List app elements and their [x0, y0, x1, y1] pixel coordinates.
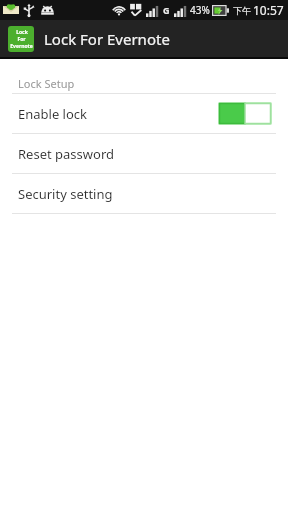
- staticText: 10:57: [253, 2, 284, 18]
- button[interactable]: Enable lock toggle: [218, 102, 272, 125]
- staticText: Lock For Evernote: [44, 29, 170, 49]
- staticText: Lock: [16, 29, 28, 36]
- staticText: Security setting: [18, 185, 113, 203]
- button[interactable]: App icon: [8, 26, 34, 52]
- staticText: Enable lock: [18, 105, 88, 123]
- staticText: Lock Setup: [18, 76, 75, 91]
- staticText: For: [17, 36, 26, 43]
- staticText: G: [163, 4, 170, 16]
- staticText: 下午: [233, 5, 251, 16]
- button[interactable]: Reset password: [0, 134, 288, 173]
- staticText: Evernote: [10, 43, 33, 50]
- staticText: 43%: [190, 3, 210, 17]
- staticText: Reset password: [18, 145, 114, 163]
- button[interactable]: Security setting: [0, 174, 288, 213]
- button[interactable]: Enable lock: [0, 94, 288, 133]
